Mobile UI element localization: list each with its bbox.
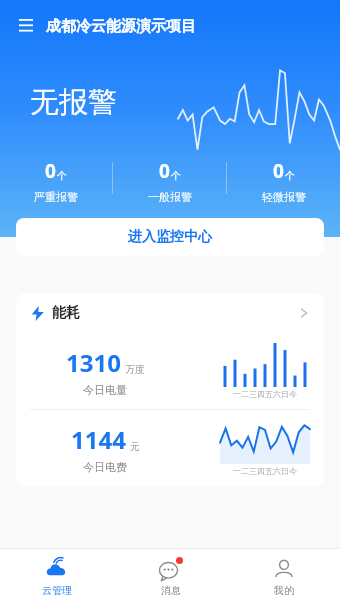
staticText: 轻微报警 [262,190,306,204]
staticText: 1144 [71,423,126,456]
staticText: 0 [273,158,284,184]
staticText: 0 [159,158,170,184]
staticText: 1310 [66,346,121,379]
staticText: 个 [57,169,67,182]
button[interactable]: 我的 [227,549,340,604]
button[interactable]: 1144 [16,410,324,486]
staticText: 无报警 [30,84,117,121]
staticText: 元 [130,440,140,453]
staticText: 个 [171,169,181,182]
staticText: 消息 [161,584,181,597]
button[interactable]: 1310 [16,333,324,409]
staticText: 一二三四五六日今 [233,389,297,399]
button[interactable]: 云管理 [0,549,114,604]
staticText: 云管理 [42,584,72,597]
staticText: 今日电费 [83,460,127,474]
staticText: 一般报警 [148,190,192,204]
staticText: 成都冷云能源演示项目 [46,17,196,36]
button[interactable]: 进入监控中心 [16,218,324,256]
staticText: 严重报警 [34,190,78,204]
staticText: 今日电量 [83,383,127,397]
button[interactable]: 0 [227,158,340,204]
staticText: 进入监控中心 [128,228,212,246]
staticText: 万度 [125,363,145,376]
button[interactable]: 消息 [114,549,227,604]
staticText: 0 [45,158,56,184]
staticText: 个 [285,169,295,182]
button[interactable]: 能耗 [16,293,324,333]
button[interactable]: 0 [113,158,226,204]
staticText: 我的 [274,584,294,597]
button[interactable]: Menu [14,14,38,38]
staticText: 一二三四五六日今 [233,466,297,476]
staticText: 能耗 [52,304,80,322]
button[interactable]: 0 [0,158,112,204]
